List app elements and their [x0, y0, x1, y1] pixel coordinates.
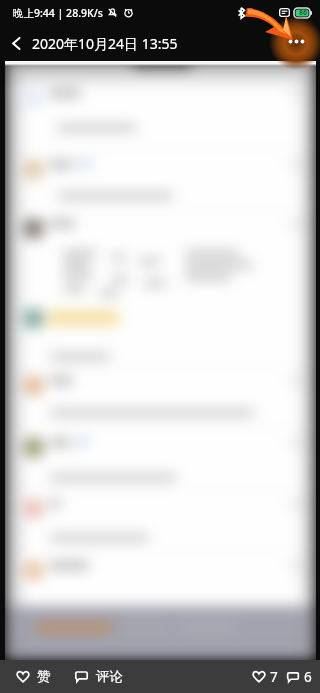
staticText: 晚上9:44 | 28.9K/s: [13, 6, 103, 20]
staticText: 评论: [96, 668, 123, 685]
button[interactable]: Back: [0, 25, 32, 61]
button[interactable]: 赞: [12, 663, 55, 690]
staticText: 2020年10月24日 13:55: [32, 34, 178, 53]
button[interactable]: 7: [249, 663, 281, 691]
button[interactable]: 评论: [70, 663, 127, 690]
staticText: 6: [304, 668, 312, 686]
button[interactable]: 6: [283, 663, 315, 691]
staticText: 86: [299, 8, 308, 18]
button[interactable]: More options: [284, 34, 306, 50]
staticText: 7: [270, 668, 278, 686]
staticText: 赞: [37, 668, 51, 685]
